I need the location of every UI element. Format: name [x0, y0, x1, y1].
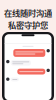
- staticText: 私密守护您: [8, 19, 48, 31]
- staticText: 端到端加密 · 消息阅后即焚: [9, 33, 47, 38]
- staticText: 在线随时沟通: [4, 7, 52, 19]
